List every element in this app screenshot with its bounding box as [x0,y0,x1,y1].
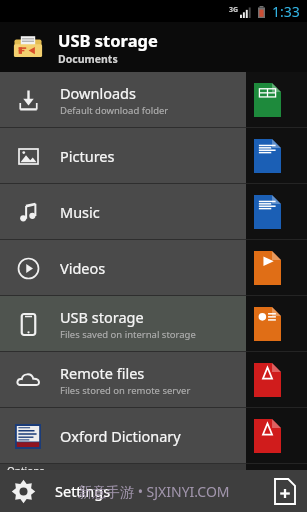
staticText: USB storage [58,29,158,51]
button[interactable]: Music [0,184,246,239]
staticText: 3G [229,5,239,15]
button[interactable] [0,296,307,351]
button[interactable] [0,72,307,127]
staticText: Default download folder [60,104,169,117]
button[interactable]: USB storage [0,22,307,72]
staticText: Videos [60,258,106,278]
button[interactable] [0,352,307,407]
button[interactable] [0,408,307,463]
staticText: Documents [58,52,118,66]
button[interactable]: USB storage [0,296,246,351]
button[interactable]: Remote files [0,352,246,407]
staticText: Pictures [60,146,115,166]
button[interactable] [0,240,307,295]
staticText: Files stored on remote server [60,384,191,397]
staticText: Oxford Dictionary [60,426,181,446]
staticText: USB storage [60,307,144,327]
staticText: Settings [55,481,111,501]
staticText: Remote files [60,363,145,383]
button[interactable]: Oxford Dictionary [0,408,246,463]
button[interactable]: New file [271,477,299,505]
button[interactable]: Pictures [0,128,246,183]
button[interactable] [0,128,307,183]
button[interactable] [0,184,307,239]
button[interactable]: Videos [0,240,246,295]
staticText: Downloads [60,83,136,103]
staticText: 1:33 [272,2,300,21]
staticText: Music [60,202,100,222]
button[interactable]: Downloads [0,72,246,127]
staticText: Options [7,464,45,470]
staticText: Files saved on internal storage [60,328,196,341]
staticText: 新意手游 • SJXINYI.COM [78,482,230,501]
button[interactable]: Settings [0,470,246,512]
